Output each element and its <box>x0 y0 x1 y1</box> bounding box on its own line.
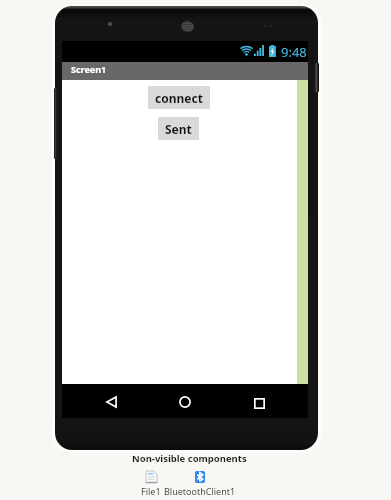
staticText: 9:48 <box>281 43 307 61</box>
button[interactable]: Sent <box>158 117 199 140</box>
staticText: Screen1 <box>71 63 107 75</box>
staticText: File1 <box>141 485 161 497</box>
staticText: Non-visible components <box>132 452 247 465</box>
button[interactable]: Home <box>165 385 205 419</box>
button[interactable]: connect <box>148 86 210 109</box>
staticText: connect <box>155 90 203 106</box>
button[interactable]: Back <box>91 385 131 419</box>
staticText: Sent <box>165 121 192 137</box>
button[interactable]: Recent apps <box>239 386 279 420</box>
staticText: BluetoothClient1 <box>164 485 236 497</box>
